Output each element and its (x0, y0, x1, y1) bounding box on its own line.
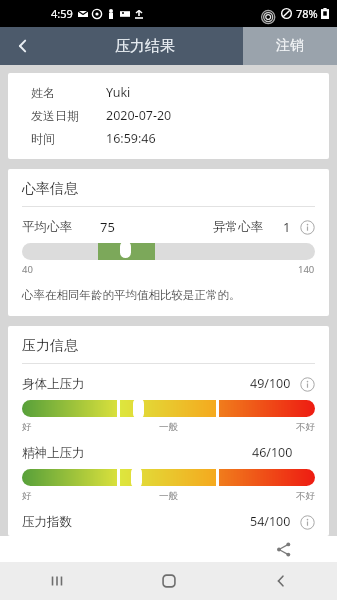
staticText: 好 (22, 421, 32, 433)
staticText: 好 (22, 490, 32, 502)
staticText: 发送日期 (31, 108, 79, 123)
button[interactable]: Share (271, 537, 295, 561)
staticText: 1 (283, 218, 291, 236)
staticText: 不好 (296, 490, 315, 502)
staticText: 40 (22, 263, 33, 276)
staticText: 注销 (276, 37, 304, 55)
staticText: 平均心率 (22, 219, 72, 235)
staticText: 140 (298, 263, 315, 276)
button[interactable]: Home (113, 562, 225, 600)
staticText: 一般 (159, 490, 178, 502)
staticText: 压力结果 (115, 37, 175, 56)
staticText: 4:59 (51, 6, 73, 21)
staticText: 压力指数 (22, 514, 72, 530)
button[interactable]: Back (0, 27, 46, 65)
button[interactable]: Info (299, 376, 315, 392)
staticText: 时间 (31, 131, 55, 146)
staticText: 54/100 (250, 513, 291, 530)
staticText: 身体上压力 (22, 376, 85, 392)
staticText: Yuki (106, 84, 131, 101)
button[interactable]: 注销 (243, 27, 337, 65)
staticText: 49/100 (250, 375, 291, 392)
button[interactable]: Info (299, 219, 315, 235)
staticText: 心率信息 (22, 180, 78, 198)
button[interactable]: Recents (0, 562, 113, 600)
staticText: 姓名 (31, 85, 55, 100)
staticText: 78% (296, 6, 318, 21)
staticText: 异常心率 (213, 219, 263, 235)
staticText: 2020-07-20 (106, 107, 172, 124)
staticText: 75 (100, 218, 115, 236)
button[interactable]: Info (299, 514, 315, 530)
staticText: 一般 (159, 421, 178, 433)
staticText: 不好 (296, 421, 315, 433)
staticText: 精神上压力 (22, 445, 85, 461)
staticText: 16:59:46 (106, 130, 156, 147)
button[interactable]: Back (225, 562, 337, 600)
staticText: 46/100 (252, 444, 293, 461)
staticText: 心率在相同年龄的平均值相比较是正常的。 (22, 288, 241, 302)
staticText: 压力信息 (22, 337, 78, 355)
